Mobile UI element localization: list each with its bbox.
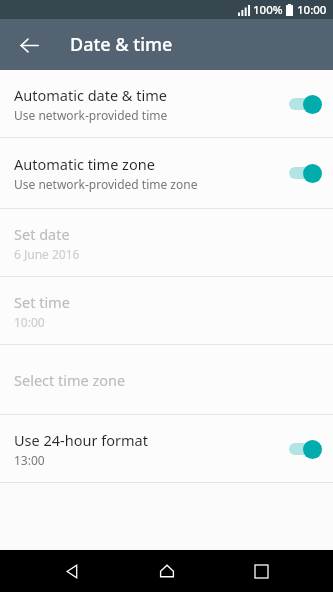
staticText: 10:00 — [297, 2, 327, 18]
button[interactable]: Use 24-hour format — [0, 415, 333, 482]
button[interactable]: Set date — [0, 209, 333, 276]
button[interactable]: Back — [50, 550, 94, 592]
staticText: Use 24-hour format — [14, 430, 148, 450]
staticText: Automatic time zone — [14, 154, 155, 174]
button[interactable]: Automatic date & time — [0, 70, 333, 137]
button[interactable]: Back — [11, 27, 47, 63]
staticText: Date & time — [70, 32, 173, 57]
button[interactable]: Select time zone — [0, 345, 333, 414]
staticText: 6 June 2016 — [14, 246, 80, 262]
staticText: Select time zone — [14, 370, 126, 390]
button[interactable]: Recent apps — [239, 550, 283, 592]
staticText: Automatic date & time — [14, 85, 167, 105]
staticText: Set date — [14, 224, 70, 244]
staticText: Use network-provided time — [14, 107, 168, 123]
button[interactable]: Automatic time zone — [0, 138, 333, 208]
staticText: Set time — [14, 292, 70, 312]
button[interactable]: Home — [145, 550, 189, 592]
staticText: 100% — [253, 2, 283, 18]
staticText: 13:00 — [14, 452, 45, 468]
staticText: 10:00 — [14, 314, 45, 330]
button[interactable]: Set time — [0, 277, 333, 344]
staticText: Use network-provided time zone — [14, 176, 198, 192]
